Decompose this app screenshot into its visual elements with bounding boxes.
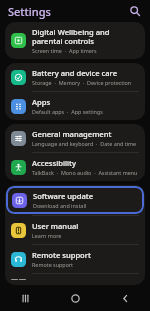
- button[interactable]: Back: [100, 285, 150, 311]
- button[interactable]: Search settings: [126, 2, 144, 20]
- button[interactable]: Apps: [5, 92, 145, 120]
- button[interactable]: General management: [5, 124, 145, 152]
- staticText: Software update: [33, 191, 94, 201]
- staticText: User manual: [32, 221, 79, 231]
- button[interactable]: Software update: [6, 186, 144, 214]
- staticText: Settings: [8, 4, 51, 19]
- staticText: General management: [32, 129, 112, 139]
- staticText: Default apps · App settings: [32, 108, 103, 115]
- staticText: Apps: [32, 97, 51, 107]
- staticText: Battery and device care: [32, 68, 117, 78]
- button[interactable]: Recent apps: [0, 285, 50, 311]
- button[interactable]: Digital Wellbeing and parental controls: [5, 22, 145, 59]
- staticText: Download and install: [33, 202, 87, 209]
- staticText: Screen time · App timers: [32, 47, 97, 54]
- staticText: TalkBack · Mono audio · Assistant menu: [32, 169, 138, 176]
- staticText: Learn more: [32, 232, 62, 239]
- button[interactable]: Remote support: [5, 245, 145, 273]
- staticText: Remote support: [32, 261, 74, 268]
- staticText: Digital Wellbeing and parental controls: [32, 27, 139, 46]
- button[interactable]: User manual: [5, 216, 145, 244]
- staticText: Language and keyboard · Date and time: [32, 140, 137, 147]
- staticText: Accessibility: [32, 158, 76, 168]
- staticText: Storage · Memory · Device protection: [32, 79, 132, 86]
- button[interactable]: Home: [50, 285, 100, 311]
- button[interactable]: About phone: [5, 274, 145, 285]
- staticText: Remote support: [32, 250, 91, 260]
- button[interactable]: Accessibility: [5, 153, 145, 181]
- button[interactable]: Battery and device care: [5, 63, 145, 91]
